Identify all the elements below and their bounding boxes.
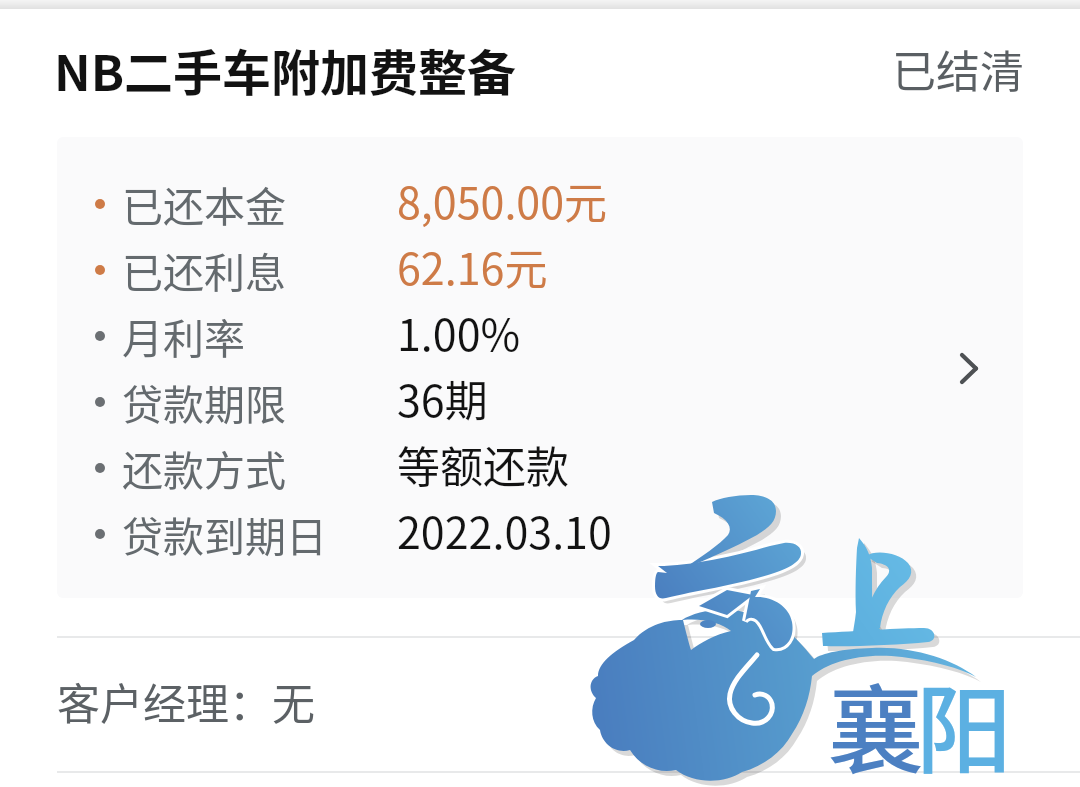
staticText: 2022.03.10: [397, 499, 612, 561]
staticText: 62.16元: [397, 235, 548, 297]
staticText: 已结清: [892, 37, 1024, 101]
staticText: 等额还款: [397, 433, 569, 495]
staticText: 襄: [828, 654, 924, 787]
staticText: 贷款到期日: [122, 504, 327, 563]
staticText: 客户经理：无: [57, 670, 315, 732]
button[interactable]: 已还本金: [57, 137, 1023, 598]
staticText: 36期: [397, 367, 488, 429]
staticText: NB二手车附加费整备: [54, 34, 517, 105]
staticText: 阳: [916, 654, 1012, 787]
staticText: 1.00%: [397, 301, 521, 363]
staticText: 已还本金: [122, 174, 286, 233]
staticText: 贷款期限: [122, 372, 286, 431]
staticText: 8,050.00元: [397, 169, 608, 231]
button[interactable]: 查看详情: [933, 332, 1005, 404]
staticText: 月利率: [122, 306, 245, 365]
staticText: 已还利息: [122, 240, 286, 299]
staticText: 还款方式: [122, 438, 286, 497]
